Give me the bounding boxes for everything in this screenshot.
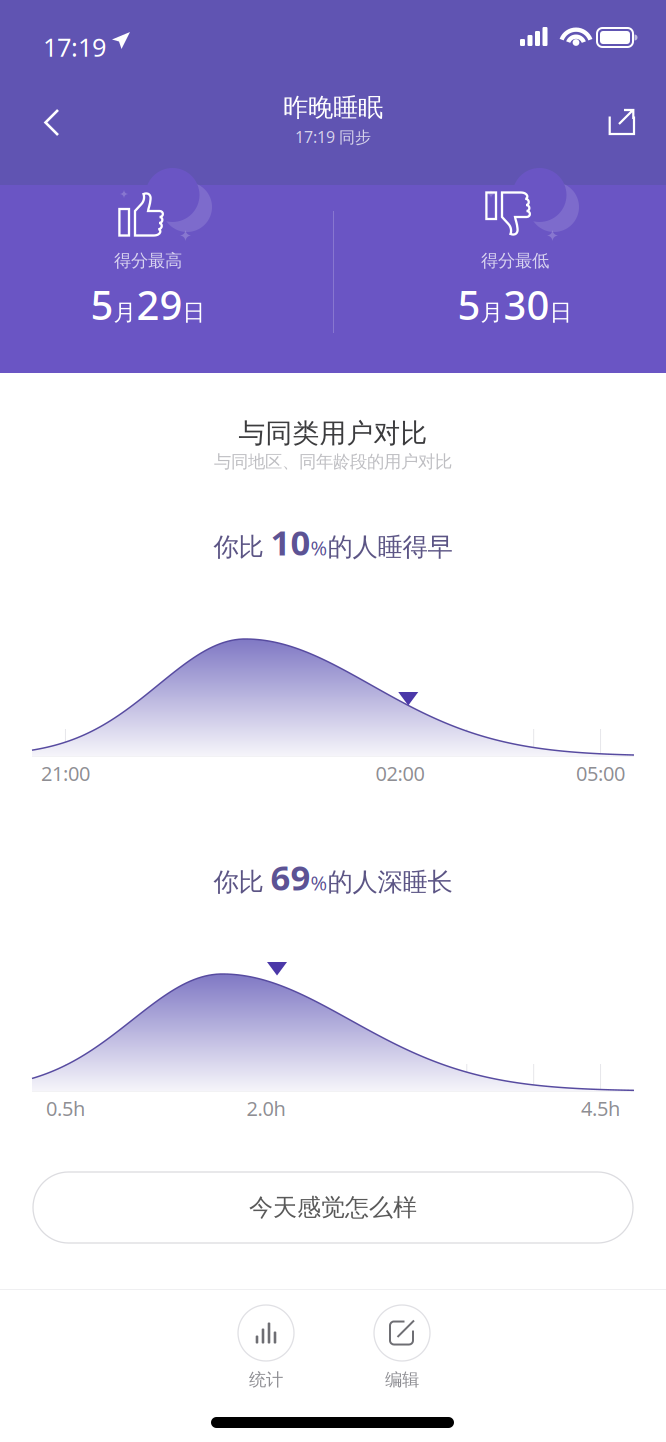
staticText: 30 [503,278,549,331]
button[interactable]: Share [588,88,656,156]
staticText: 29 [136,278,182,331]
staticText: 17:19 同步 [295,126,371,147]
staticText: % [310,869,327,896]
staticText: 编辑 [385,1369,419,1390]
staticText: 月 [480,299,503,326]
staticText: 2.0h [247,1095,286,1122]
button[interactable]: 统计 [226,1305,306,1390]
staticText: 统计 [249,1369,283,1390]
staticText: 0.5h [46,1095,85,1122]
staticText: 69 [270,854,310,900]
staticText: 日 [549,299,572,326]
staticText: 10 [270,519,310,565]
staticText: 5 [90,278,113,331]
staticText: 得分最高 [114,250,182,271]
staticText: 05:00 [576,760,625,787]
button[interactable]: 今天感觉怎么样 [33,1172,633,1243]
staticText: 的人睡得早 [327,531,452,563]
staticText: 与同地区、同年龄段的用户对比 [214,451,452,472]
staticText: 的人深睡长 [327,866,452,898]
staticText: 4.5h [581,1095,620,1122]
staticText: 02:00 [375,760,424,787]
staticText: 月 [113,299,136,326]
staticText: 昨晚睡眠 [283,92,383,123]
staticText: 5 [457,278,480,331]
button[interactable]: Back [22,90,82,156]
staticText: 与同类用户对比 [238,417,427,450]
button[interactable]: 编辑 [362,1305,442,1390]
staticText: 21:00 [41,760,90,787]
staticText: 今天感觉怎么样 [249,1193,417,1222]
staticText: % [310,534,327,561]
staticText: 17:19 [43,30,106,64]
staticText: 你比 [213,531,263,563]
staticText: 得分最低 [481,250,549,271]
staticText: 日 [182,299,205,326]
staticText: 你比 [213,866,263,898]
